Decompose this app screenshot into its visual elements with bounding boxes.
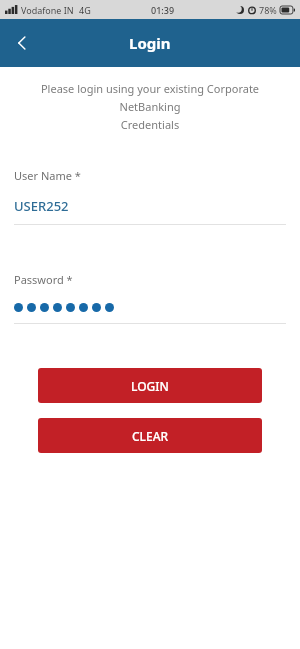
button[interactable]: Back xyxy=(0,21,44,65)
button[interactable]: USER252 xyxy=(14,197,286,215)
staticText: CLEAR xyxy=(132,428,169,444)
staticText: Login xyxy=(129,33,171,53)
button[interactable]: LOGIN xyxy=(38,368,262,403)
staticText: 4G xyxy=(79,4,91,16)
button[interactable]: CLEAR xyxy=(38,418,262,453)
button[interactable] xyxy=(14,301,286,313)
staticText: 78% xyxy=(259,4,277,16)
staticText: LOGIN xyxy=(131,378,169,394)
staticText: Vodafone IN xyxy=(21,4,74,16)
staticText: 01:39 xyxy=(151,4,175,16)
staticText: User Name * xyxy=(14,168,286,183)
staticText: USER252 xyxy=(14,197,69,215)
staticText: Password * xyxy=(14,272,286,287)
staticText: Please login using your existing Corpora… xyxy=(14,81,286,132)
